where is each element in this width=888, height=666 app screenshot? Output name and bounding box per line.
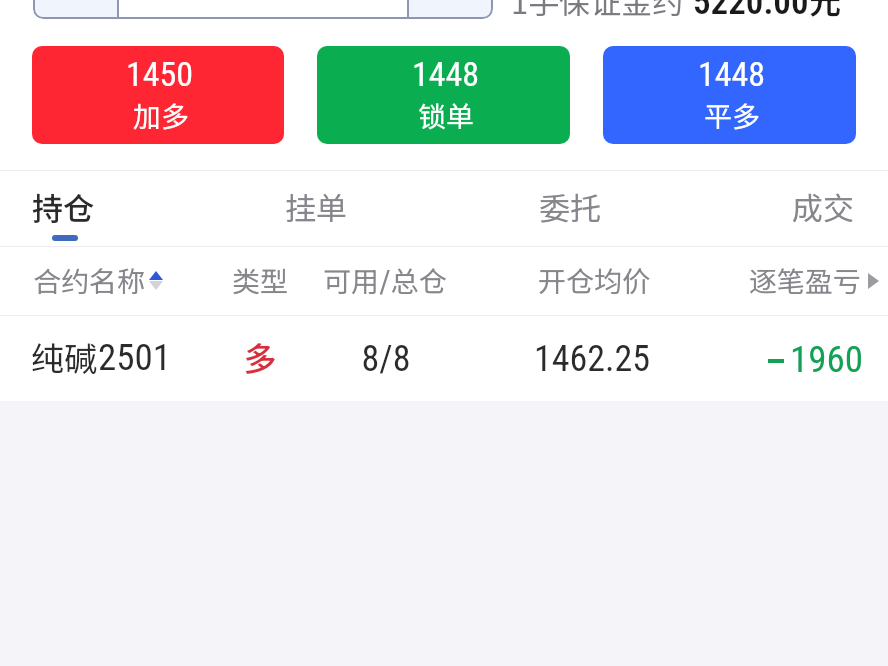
staticText: 合约名称 bbox=[33, 260, 146, 301]
button[interactable]: 挂单 bbox=[285, 171, 347, 235]
button[interactable]: 1448 bbox=[317, 46, 570, 144]
button[interactable]: 成交 bbox=[792, 171, 854, 235]
staticText: 1462.25 bbox=[492, 338, 692, 380]
staticText: 成交 bbox=[792, 184, 854, 229]
button[interactable]: 委托 bbox=[539, 171, 601, 235]
button[interactable]: 1448 bbox=[603, 46, 856, 144]
staticText: 挂单 bbox=[285, 184, 347, 229]
staticText: 平多 bbox=[704, 95, 761, 136]
button[interactable]: Increase quantity bbox=[409, 0, 493, 19]
button[interactable]: 逐笔盈亏 bbox=[749, 260, 879, 301]
button[interactable] bbox=[119, 0, 407, 19]
staticText: 可用/总仓 bbox=[285, 260, 485, 301]
staticText: 锁单 bbox=[418, 95, 475, 136]
button[interactable]: 1450 bbox=[32, 46, 284, 144]
staticText: 1448 bbox=[412, 54, 480, 94]
staticText: 5220.00 bbox=[693, 0, 809, 23]
staticText: 逐笔盈亏 bbox=[749, 260, 862, 301]
staticText: 开仓均价 bbox=[494, 260, 694, 301]
staticText: 元 bbox=[809, 0, 842, 23]
button[interactable]: 持仓 bbox=[32, 171, 94, 241]
staticText: 8/8 bbox=[286, 338, 486, 380]
staticText: 纯碱 bbox=[31, 333, 97, 381]
staticText: 1448 bbox=[698, 54, 766, 94]
staticText: 多 bbox=[200, 333, 320, 381]
staticText: 类型 bbox=[200, 260, 320, 301]
staticText: 1960 bbox=[790, 338, 864, 381]
button[interactable]: 合约名称 bbox=[33, 260, 163, 301]
staticText: 2501 bbox=[98, 336, 172, 379]
staticText: 委托 bbox=[539, 184, 601, 229]
staticText: 1手保证金约 bbox=[511, 0, 684, 23]
staticText: 加多 bbox=[133, 95, 190, 136]
other: More columns bbox=[868, 273, 879, 289]
button[interactable]: Decrease quantity bbox=[33, 0, 117, 19]
staticText: 1450 bbox=[126, 54, 194, 94]
button[interactable]: 纯碱 bbox=[0, 316, 888, 401]
staticText: 持仓 bbox=[32, 184, 94, 229]
